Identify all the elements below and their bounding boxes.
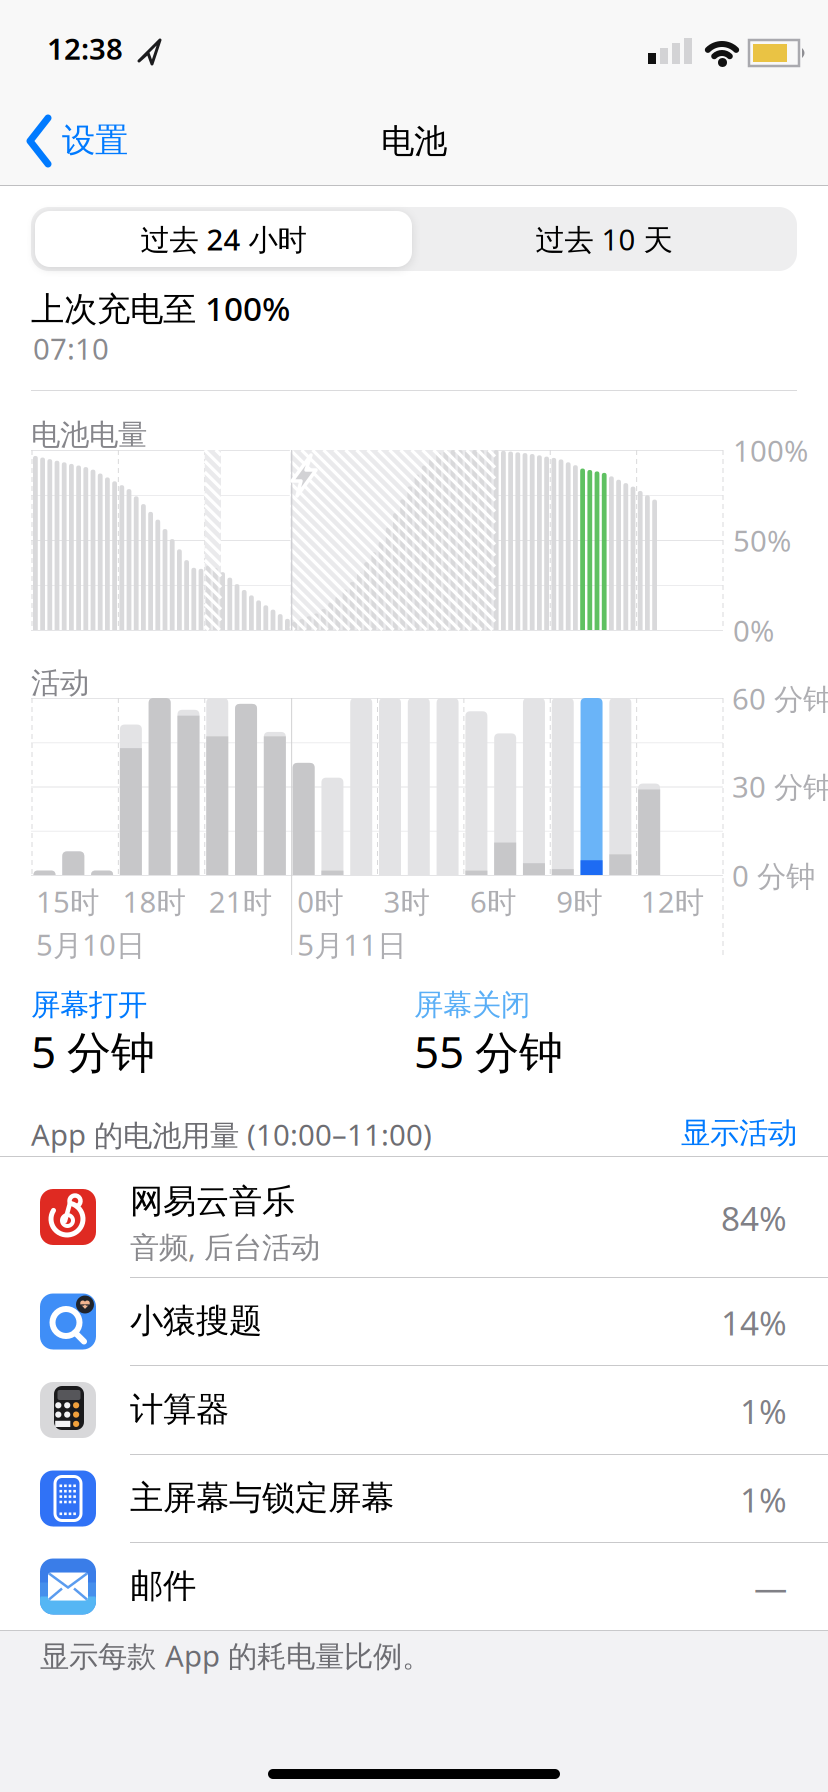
- staticText: 6时: [470, 882, 516, 921]
- staticText: 屏幕关闭: [414, 987, 530, 1023]
- staticText: 网易云音乐: [130, 1181, 295, 1222]
- staticText: 主屏幕与锁定屏幕: [130, 1477, 394, 1518]
- staticText: 60 分钟: [732, 679, 828, 718]
- staticText: 9时: [556, 882, 602, 921]
- staticText: 14%: [721, 1300, 787, 1345]
- staticText: 活动: [31, 665, 89, 701]
- staticText: 显示每款 App 的耗电量比例。: [40, 1636, 431, 1675]
- staticText: 18时: [122, 882, 185, 921]
- staticText: 15时: [36, 882, 99, 921]
- staticText: 12时: [641, 882, 704, 921]
- staticText: 84%: [721, 1196, 787, 1240]
- staticText: 0时: [297, 882, 343, 921]
- button[interactable]: 计算器: [0, 1366, 828, 1454]
- button[interactable]: 小猿搜题: [0, 1278, 828, 1365]
- staticText: 0%: [733, 611, 774, 650]
- staticText: 21时: [209, 882, 272, 921]
- button[interactable]: 过去 24 小时: [35, 211, 412, 267]
- staticText: 显示活动: [681, 1115, 797, 1151]
- staticText: 上次充电至 100%: [31, 286, 290, 330]
- staticText: 55 分钟: [414, 1022, 563, 1080]
- staticText: 07:10: [33, 329, 109, 368]
- staticText: 30 分钟: [732, 767, 828, 806]
- staticText: 5月11日: [297, 925, 406, 964]
- staticText: 1%: [740, 1477, 787, 1522]
- staticText: 50%: [733, 521, 791, 560]
- staticText: 12:38: [47, 29, 123, 68]
- staticText: 过去 24 小时: [140, 219, 306, 258]
- staticText: 0 分钟: [732, 856, 815, 895]
- staticText: 设置: [62, 120, 128, 161]
- button[interactable]: 显示活动: [597, 1115, 797, 1151]
- button[interactable]: 网易云音乐: [0, 1157, 828, 1277]
- staticText: 1%: [740, 1389, 787, 1433]
- staticText: App 的电池用量 (10:00–11:00): [31, 1115, 432, 1154]
- button[interactable]: 邮件: [0, 1543, 828, 1630]
- staticText: 5月10日: [36, 925, 145, 964]
- staticText: 小猿搜题: [130, 1300, 262, 1341]
- staticText: 音频, 后台活动: [130, 1227, 320, 1266]
- staticText: 电池: [381, 121, 447, 162]
- staticText: 电池电量: [31, 417, 147, 453]
- button[interactable]: 过去 10 天: [414, 207, 794, 271]
- staticText: 邮件: [130, 1565, 196, 1606]
- button[interactable]: 主屏幕与锁定屏幕: [0, 1455, 828, 1542]
- staticText: 100%: [733, 431, 808, 470]
- button[interactable]: 返回设置: [0, 104, 150, 184]
- staticText: 计算器: [130, 1389, 229, 1430]
- staticText: 过去 10 天: [535, 219, 672, 258]
- staticText: 5 分钟: [31, 1022, 155, 1080]
- staticText: 屏幕打开: [31, 987, 147, 1023]
- staticText: 3时: [383, 882, 429, 921]
- staticText: —: [754, 1565, 787, 1610]
